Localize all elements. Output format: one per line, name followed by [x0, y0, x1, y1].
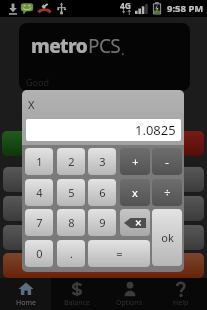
- button[interactable]: Options: [103, 278, 155, 310]
- staticText: =: [116, 246, 123, 261]
- button[interactable]: 1: [25, 148, 53, 175]
- button[interactable]: [3, 167, 204, 192]
- button[interactable]: Home: [0, 278, 51, 310]
- button[interactable]: 9: [88, 209, 116, 236]
- staticText: 3: [99, 154, 106, 169]
- staticText: 2: [68, 154, 75, 169]
- staticText: Options: [116, 298, 143, 308]
- staticText: PCS: [88, 33, 121, 59]
- button[interactable]: [2, 131, 101, 156]
- button[interactable]: x: [120, 179, 150, 206]
- staticText: 8: [68, 215, 75, 230]
- staticText: 9:58 PM: [167, 2, 204, 15]
- button[interactable]: [3, 253, 204, 278]
- button[interactable]: =: [88, 240, 150, 267]
- button[interactable]: 4: [25, 179, 53, 206]
- staticText: 1: [36, 154, 43, 169]
- button[interactable]: [3, 196, 204, 221]
- staticText: .: [121, 41, 125, 59]
- button[interactable]: Help: [155, 278, 207, 310]
- staticText: 9: [99, 215, 106, 230]
- staticText: -: [165, 154, 169, 169]
- button[interactable]: 5: [57, 179, 85, 206]
- staticText: x: [132, 185, 138, 200]
- button[interactable]: .: [57, 240, 85, 267]
- button[interactable]: 8: [57, 209, 85, 236]
- staticText: metro: [31, 33, 88, 59]
- staticText: Good: [26, 76, 49, 88]
- button[interactable]: Balance: [51, 278, 103, 310]
- button[interactable]: 3: [88, 148, 116, 175]
- staticText: 4: [36, 185, 43, 200]
- staticText: 5: [68, 185, 75, 200]
- button[interactable]: cancel: [105, 131, 204, 156]
- button[interactable]: 1.0825: [26, 119, 181, 141]
- staticText: Home: [16, 298, 36, 308]
- button[interactable]: [3, 225, 204, 250]
- button[interactable]: +: [120, 148, 150, 175]
- button[interactable]: 7: [25, 209, 53, 236]
- button[interactable]: ok: [152, 209, 182, 266]
- button[interactable]: -: [152, 148, 182, 175]
- staticText: .: [70, 246, 73, 261]
- staticText: ok: [161, 230, 174, 245]
- staticText: 0: [36, 246, 43, 261]
- staticText: Help: [173, 298, 189, 308]
- button[interactable]: 2: [57, 148, 85, 175]
- staticText: cancel: [138, 136, 171, 151]
- button[interactable]: 0: [25, 240, 53, 267]
- staticText: ÷: [164, 185, 171, 200]
- button[interactable]: ÷: [152, 179, 182, 206]
- staticText: 1.0825: [135, 121, 176, 139]
- staticText: 4G: [120, 0, 132, 12]
- staticText: Balance: [64, 298, 90, 308]
- staticText: +: [132, 154, 139, 169]
- staticText: 6: [99, 185, 106, 200]
- staticText: 7: [36, 215, 43, 230]
- button[interactable]: 6: [88, 179, 116, 206]
- button[interactable]: Backspace: [120, 209, 150, 236]
- staticText: X: [28, 97, 35, 112]
